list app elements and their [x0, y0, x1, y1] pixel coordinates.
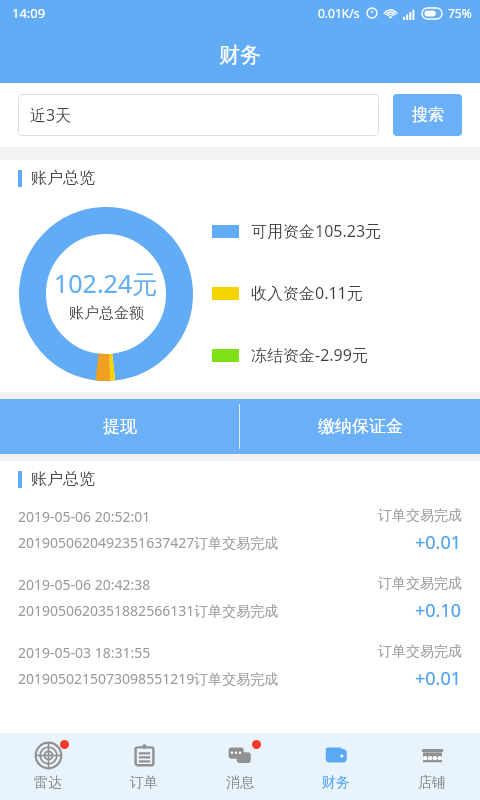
button[interactable]: 雷达 [0, 733, 96, 800]
staticText: 75% [448, 5, 472, 21]
staticText: 102.24元 [54, 266, 158, 300]
staticText: 提现 [103, 416, 137, 437]
staticText: 雷达 [34, 774, 62, 792]
staticText: +0.01 [415, 530, 462, 555]
staticText: 收入资金0.11元 [251, 282, 363, 304]
button[interactable]: 2019-05-06 20:42:38 [0, 565, 480, 633]
button[interactable]: 缴纳保证金 [240, 399, 480, 454]
staticText: 订单 [130, 774, 158, 792]
button[interactable]: 2019-05-03 18:31:55 [0, 633, 480, 701]
staticText: 缴纳保证金 [318, 416, 403, 437]
staticText: 账户总览 [31, 469, 95, 489]
staticText: 2019050620492351637427订单交易完成 [18, 533, 279, 552]
staticText: 消息 [226, 774, 254, 792]
staticText: 订单交易完成 [378, 643, 462, 661]
staticText: +0.01 [415, 666, 462, 691]
staticText: 0.01K/s [318, 5, 360, 21]
staticText: 订单交易完成 [378, 575, 462, 593]
staticText: 财务 [322, 774, 350, 792]
staticText: 2019-05-03 18:31:55 [18, 643, 151, 662]
staticText: 2019-05-06 20:42:38 [18, 575, 151, 594]
staticText: 冻结资金-2.99元 [251, 344, 368, 366]
staticText: 2019-05-06 20:52:01 [18, 507, 151, 526]
button[interactable]: 提现 [0, 399, 239, 454]
button[interactable]: 2019-05-06 20:52:01 [0, 497, 480, 565]
button[interactable]: 近3天 [18, 94, 379, 136]
button[interactable]: 店铺 [384, 733, 480, 800]
staticText: 搜索 [412, 105, 444, 125]
button[interactable]: 订单 [96, 733, 192, 800]
button[interactable]: 搜索 [393, 94, 462, 136]
staticText: 可用资金105.23元 [251, 220, 382, 242]
button[interactable]: 财务 [288, 733, 384, 800]
staticText: +0.10 [415, 598, 462, 623]
staticText: 14:09 [12, 4, 46, 22]
staticText: 账户总金额 [69, 304, 144, 323]
staticText: 店铺 [418, 774, 446, 792]
staticText: 2019050215073098551219订单交易完成 [18, 669, 279, 688]
staticText: 账户总览 [31, 168, 95, 188]
button[interactable]: 消息 [192, 733, 288, 800]
staticText: 近3天 [30, 104, 72, 126]
staticText: 订单交易完成 [378, 507, 462, 525]
staticText: 财务 [219, 42, 261, 68]
staticText: 2019050620351882566131订单交易完成 [18, 601, 279, 620]
